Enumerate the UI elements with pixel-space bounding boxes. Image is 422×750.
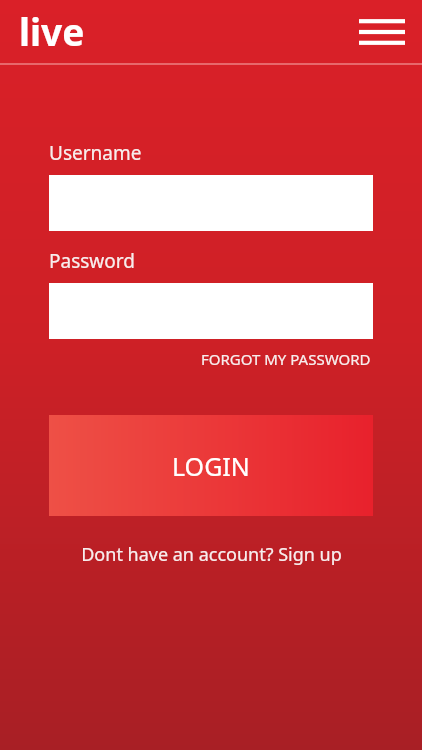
button[interactable]: LOGIN	[49, 415, 373, 516]
staticText: Username	[49, 140, 142, 166]
staticText: Password	[49, 248, 135, 274]
button[interactable]: Dont have an account? Sign up	[77, 540, 346, 569]
button[interactable]: Menu	[354, 4, 410, 60]
button[interactable]: live	[19, 6, 85, 56]
staticText: LOGIN	[172, 449, 250, 483]
button[interactable]: FORGOT MY PASSWORD	[199, 347, 373, 371]
